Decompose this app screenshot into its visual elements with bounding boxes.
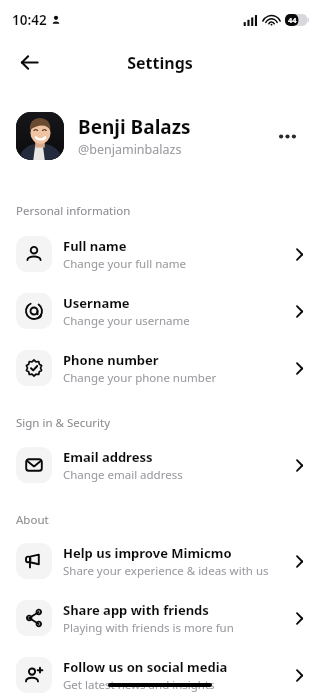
staticText: Full name	[63, 237, 127, 255]
staticText: Username	[63, 294, 130, 312]
staticText: Get latest news and insights	[63, 677, 215, 693]
staticText: Email address	[63, 448, 153, 466]
staticText: Sign in & Security	[16, 415, 111, 431]
staticText: Change your full name	[63, 256, 186, 272]
staticText: 44	[288, 15, 297, 25]
staticText: Benji Balazs	[78, 114, 191, 140]
staticText: About	[16, 512, 49, 528]
staticText: Help us improve Mimicmo	[63, 544, 232, 562]
button[interactable]: Email address	[0, 444, 320, 486]
staticText: Settings	[0, 52, 320, 74]
staticText: @benjaminbalazs	[78, 141, 182, 158]
staticText: Follow us on social media	[63, 658, 228, 676]
button[interactable]: Help us improve Mimicmo	[0, 540, 320, 582]
button[interactable]: Share app with friends	[0, 597, 320, 639]
button[interactable]: Profile photo	[16, 112, 64, 160]
button[interactable]: More options	[270, 119, 304, 153]
staticText: Playing with friends is more fun	[63, 620, 234, 636]
button[interactable]: Full name	[0, 233, 320, 275]
button[interactable]: Back	[11, 44, 47, 80]
staticText: Phone number	[63, 351, 159, 369]
staticText: Share your experience & ideas with us	[63, 563, 269, 579]
staticText: Change your phone number	[63, 370, 217, 386]
staticText: Share app with friends	[63, 601, 209, 619]
staticText: Change your username	[63, 313, 190, 329]
staticText: 10:42	[12, 11, 47, 29]
button[interactable]: Follow us on social media	[0, 654, 320, 694]
staticText: Change email address	[63, 467, 183, 483]
staticText: Personal information	[16, 203, 131, 219]
button[interactable]: Phone number	[0, 347, 320, 389]
button[interactable]: Username	[0, 290, 320, 332]
button[interactable]: Profile photo	[0, 106, 320, 166]
